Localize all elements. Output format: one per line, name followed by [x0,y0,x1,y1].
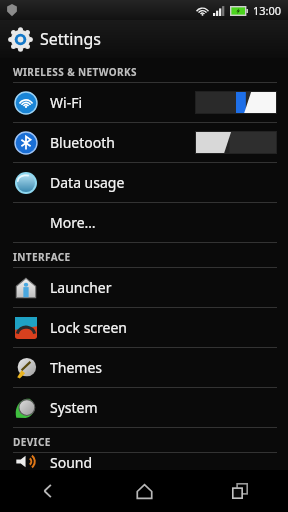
staticText: More… [50,213,96,232]
button[interactable]: Sound [0,453,288,470]
button[interactable]: Home [96,470,192,512]
button[interactable]: Recent apps [192,470,288,512]
button[interactable]: Back [0,470,96,512]
button[interactable]: Themes [0,348,288,387]
button[interactable]: Launcher [0,268,288,307]
staticText: Wi-Fi [50,93,83,112]
button[interactable]: System [0,388,288,427]
staticText: DEVICE [13,435,51,449]
staticText: Launcher [50,278,112,297]
staticText: Settings [40,28,101,50]
button[interactable]: Bluetooth off [195,131,277,154]
staticText: Sound [50,453,93,470]
staticText: Data usage [50,173,125,192]
staticText: WIRELESS & NETWORKS [13,65,137,79]
button[interactable]: Bluetooth [0,123,288,162]
button[interactable]: Data usage [0,163,288,202]
button[interactable]: More… [0,203,288,242]
staticText: INTERFACE [13,250,71,264]
button[interactable]: Wi-Fi on [195,91,277,114]
staticText: Themes [50,358,103,377]
button[interactable]: Lock screen [0,308,288,347]
staticText: Lock screen [50,318,128,337]
button[interactable]: Wi-Fi [0,83,288,122]
staticText: Bluetooth [50,133,115,152]
staticText: 13:00 [253,3,282,18]
staticText: System [50,398,98,417]
